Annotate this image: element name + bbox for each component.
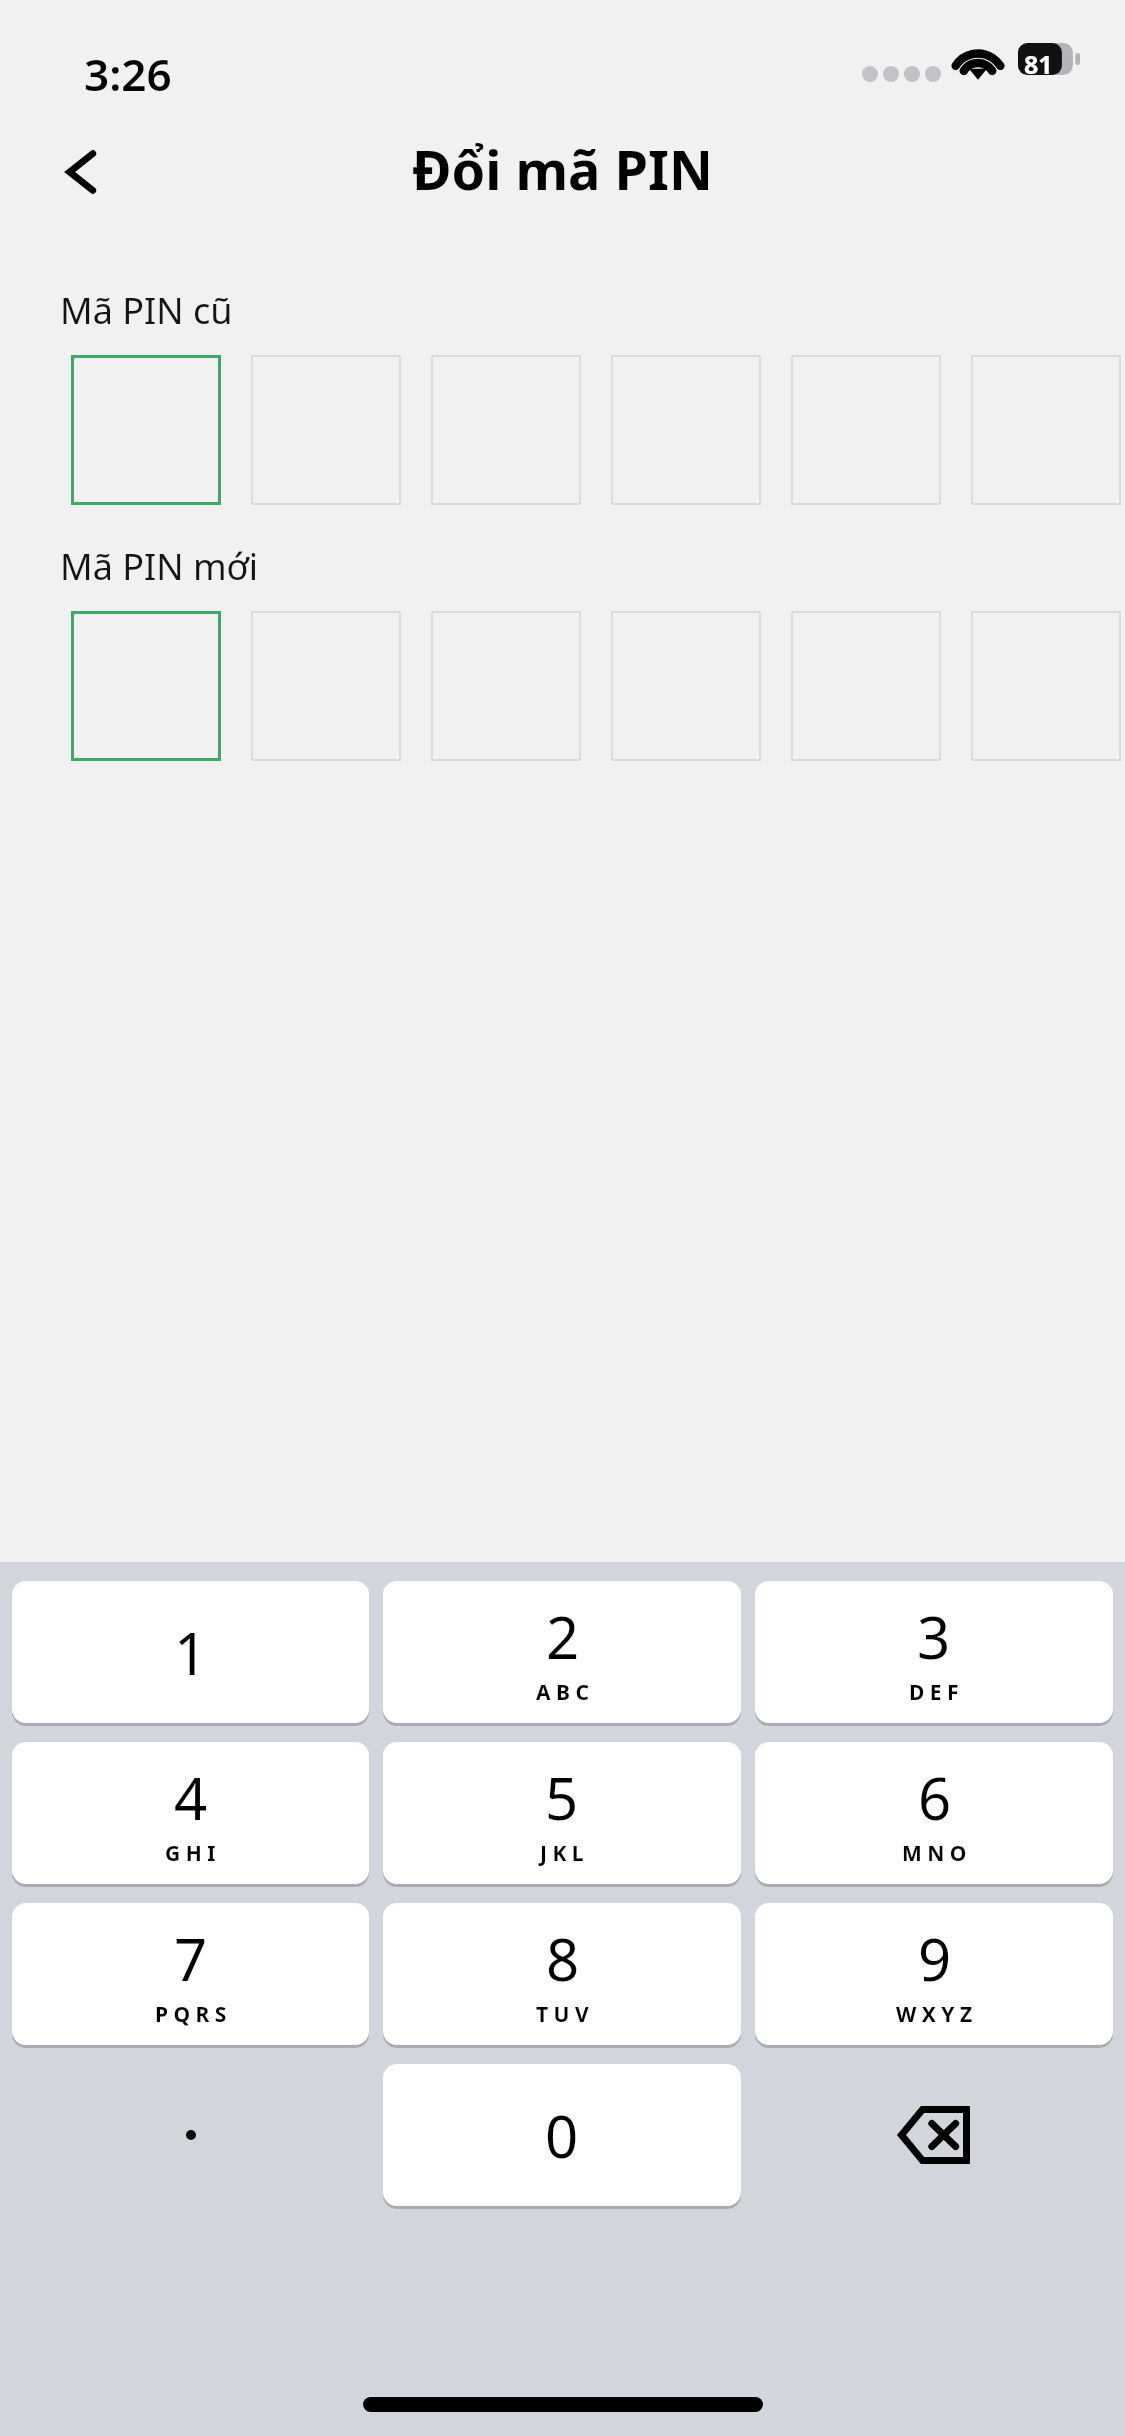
button[interactable] xyxy=(12,2064,369,2206)
staticText: Mã PIN mới xyxy=(60,542,259,591)
staticText: W X Y Z xyxy=(896,2000,973,2029)
staticText: 0 xyxy=(545,2096,579,2175)
staticText: 1 xyxy=(174,1613,208,1692)
button[interactable]: 1 xyxy=(12,1581,369,1723)
button[interactable] xyxy=(431,355,581,505)
button[interactable] xyxy=(611,355,761,505)
staticText: Đổi mã PIN xyxy=(412,132,713,206)
staticText: 6 xyxy=(918,1758,952,1837)
button[interactable] xyxy=(791,611,941,761)
button[interactable] xyxy=(971,611,1121,761)
staticText: 3:26 xyxy=(84,44,172,104)
button[interactable] xyxy=(791,355,941,505)
staticText: 2 xyxy=(546,1597,580,1676)
button[interactable] xyxy=(431,611,581,761)
staticText: 4 xyxy=(174,1758,208,1837)
button[interactable]: 2 xyxy=(383,1581,741,1723)
staticText: Mã PIN cũ xyxy=(60,286,233,335)
staticText: 5 xyxy=(545,1758,579,1837)
button[interactable]: 0 xyxy=(383,2064,741,2206)
staticText: T U V xyxy=(536,2000,589,2029)
button[interactable]: 8 xyxy=(383,1903,741,2045)
button[interactable]: 6 xyxy=(755,1742,1113,1884)
staticText: 3 xyxy=(917,1597,951,1676)
button[interactable]: 3 xyxy=(755,1581,1113,1723)
staticText: 9 xyxy=(918,1919,952,1998)
button[interactable] xyxy=(971,355,1121,505)
button[interactable] xyxy=(251,355,401,505)
staticText: M N O xyxy=(902,1839,967,1868)
button[interactable] xyxy=(71,611,221,761)
button[interactable] xyxy=(251,611,401,761)
staticText: 7 xyxy=(174,1919,208,1998)
staticText: P Q R S xyxy=(155,2000,227,2029)
button[interactable]: Backspace xyxy=(755,2064,1113,2206)
staticText: 8 xyxy=(546,1919,580,1998)
button[interactable]: 9 xyxy=(755,1903,1113,2045)
staticText: D E F xyxy=(909,1678,959,1707)
staticText: A B C xyxy=(536,1678,589,1707)
button[interactable]: Back xyxy=(32,122,132,222)
button[interactable]: 5 xyxy=(383,1742,741,1884)
staticText: J K L xyxy=(540,1839,584,1868)
staticText: G H I xyxy=(165,1839,216,1868)
button[interactable]: 4 xyxy=(12,1742,369,1884)
staticText: 81 xyxy=(1024,47,1053,81)
button[interactable] xyxy=(71,355,221,505)
button[interactable]: 7 xyxy=(12,1903,369,2045)
button[interactable] xyxy=(611,611,761,761)
